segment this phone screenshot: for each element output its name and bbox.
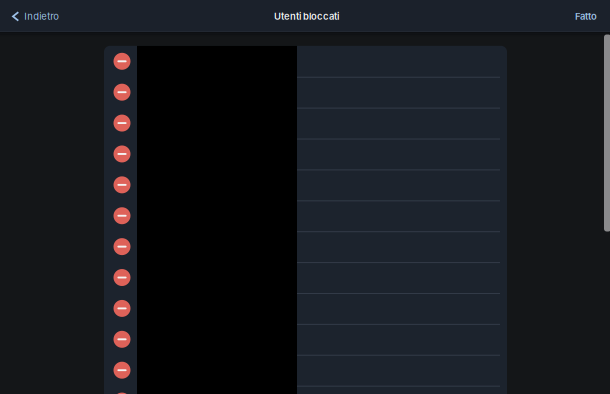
- button[interactable]: Fatto: [0, 0, 610, 31]
- button[interactable]: Utente bloccato: [104, 169, 507, 200]
- button[interactable]: Utente bloccato: [104, 200, 507, 231]
- staticText: Utenti bloccati: [274, 11, 339, 22]
- staticText: Indietro: [24, 11, 59, 22]
- button[interactable]: Utente bloccato: [104, 262, 507, 293]
- button[interactable]: Utente bloccato: [104, 324, 507, 355]
- button[interactable]: Utente bloccato: [104, 77, 507, 108]
- button[interactable]: Indietro: [0, 0, 69, 31]
- button[interactable]: Utente bloccato: [104, 108, 507, 138]
- button[interactable]: Utente bloccato: [104, 138, 507, 169]
- button[interactable]: Utente bloccato: [104, 46, 507, 77]
- button[interactable]: Utente bloccato: [104, 231, 507, 262]
- button[interactable]: Utente bloccato: [104, 386, 507, 394]
- button[interactable]: Utente bloccato: [104, 293, 507, 324]
- button[interactable]: Utente bloccato: [104, 355, 507, 386]
- staticText: Fatto: [575, 11, 597, 22]
